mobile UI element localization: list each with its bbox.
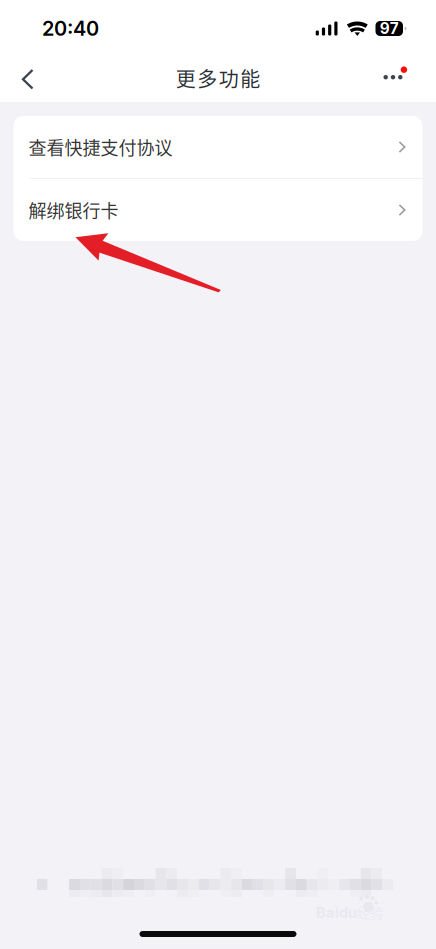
staticText: 20:40 [42,16,99,41]
staticText: 97 [380,19,399,38]
button[interactable]: 解绑银行卡 [13,179,422,241]
staticText: 解绑银行卡 [28,197,118,223]
button[interactable]: 查看快捷支付协议 [13,116,422,178]
staticText: Baidu [316,903,357,921]
button[interactable]: More options [384,55,417,103]
staticText: 查看快捷支付协议 [28,134,172,160]
button[interactable]: Back [6,55,50,103]
staticText: 经验 [357,903,383,922]
staticText: 更多功能 [176,63,260,92]
